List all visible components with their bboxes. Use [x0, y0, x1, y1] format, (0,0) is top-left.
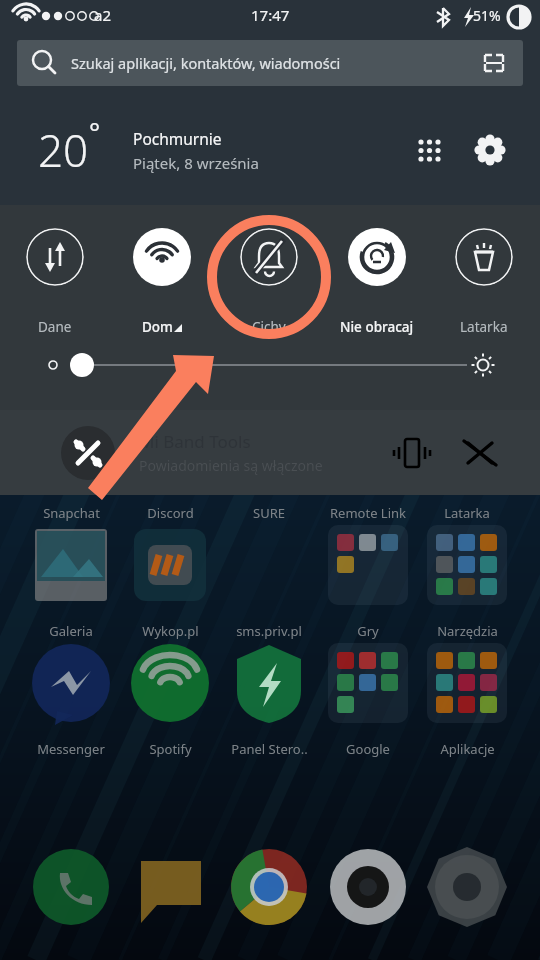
staticText: Remote Link	[330, 504, 406, 522]
button[interactable]: Aplikacje	[418, 739, 516, 759]
staticText: SURE	[253, 504, 285, 522]
button[interactable]: Messenger	[22, 739, 120, 759]
button[interactable]: Wycisz	[458, 431, 502, 475]
button[interactable]: Discord	[121, 503, 219, 523]
button[interactable]: Gry	[319, 621, 417, 641]
staticText: 51%	[473, 6, 501, 25]
staticText: Dane	[38, 318, 72, 336]
button[interactable]: Panel Stero..	[220, 739, 318, 759]
staticText: Nie obracaj	[340, 318, 414, 336]
button[interactable]: Snapchat	[22, 503, 120, 523]
staticText: Powiadomienia są włączone	[139, 456, 323, 475]
staticText: °	[89, 114, 101, 149]
staticText: Messenger	[37, 740, 105, 758]
button[interactable]: Remote Link	[319, 503, 417, 523]
button[interactable]: Cichy	[219, 228, 319, 346]
staticText: a2	[94, 5, 111, 25]
button[interactable]: Google	[319, 739, 417, 759]
staticText: Google	[346, 740, 390, 758]
staticText: sms.priv.pl	[236, 622, 302, 640]
button[interactable]: sms.priv.pl	[220, 621, 318, 641]
button[interactable]: Szukaj aplikacji, kontaktów, wiadomości	[17, 40, 523, 86]
button[interactable]: Latarka	[434, 228, 534, 346]
button[interactable]: Latarka	[418, 503, 516, 523]
staticText: Latarka	[460, 318, 508, 336]
button[interactable]: Nie obracaj	[327, 228, 427, 346]
staticText: Galeria	[49, 622, 93, 640]
button[interactable]: Dane	[5, 228, 105, 346]
button[interactable]: Wykop.pl	[121, 621, 219, 641]
button[interactable]: Galeria	[22, 621, 120, 641]
staticText: Latarka	[444, 504, 490, 522]
button[interactable]: Spotify	[121, 739, 219, 759]
staticText: Spotify	[149, 740, 192, 758]
staticText: Cichy	[252, 318, 286, 336]
staticText: Mi Band Tools	[139, 430, 251, 453]
button[interactable]: Mi Band Tools	[0, 410, 540, 495]
staticText: 17:47	[251, 5, 290, 25]
staticText: 20	[38, 120, 89, 180]
button[interactable]: Skanuj kod	[479, 48, 509, 78]
button[interactable]: Ustawienia	[468, 128, 512, 172]
staticText: Discord	[147, 504, 194, 522]
staticText: Szukaj aplikacji, kontaktów, wiadomości	[71, 53, 341, 73]
staticText: Narzędzia	[437, 622, 498, 640]
staticText: Piątek, 8 września	[133, 153, 259, 173]
button[interactable]: Dom	[112, 228, 212, 346]
staticText: Wykop.pl	[142, 622, 199, 640]
staticText: Aplikacje	[440, 740, 495, 758]
staticText: Dom	[142, 318, 173, 336]
staticText: Pochmurnie	[133, 128, 222, 149]
staticText: Panel Stero..	[231, 740, 308, 758]
staticText: Snapchat	[43, 504, 100, 522]
button[interactable]: Aplikacje	[408, 129, 450, 171]
button[interactable]: SURE	[220, 503, 318, 523]
staticText: Gry	[357, 622, 379, 640]
button[interactable]: Wibracje	[390, 431, 434, 475]
button[interactable]: Narzędzia	[418, 621, 516, 641]
